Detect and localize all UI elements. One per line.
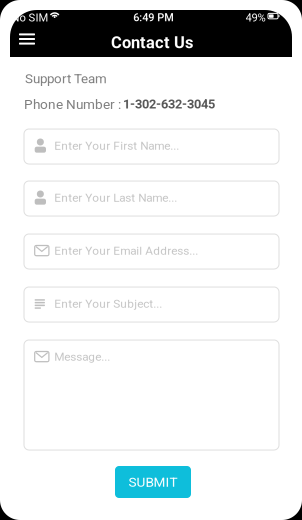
staticText: SUBMIT [128, 474, 177, 490]
staticText: Phone Number : [24, 96, 124, 112]
staticText: Enter Your Email Address... [54, 244, 198, 258]
staticText: Enter Your First Name... [54, 139, 179, 153]
staticText: Support Team [25, 71, 107, 87]
staticText: 1-302-632-3045 [123, 97, 215, 112]
staticText: 6:49 PM [133, 11, 174, 24]
staticText: Contact Us [111, 33, 193, 52]
staticText: Message... [54, 350, 110, 364]
staticText: No SIM [12, 11, 49, 24]
button[interactable]: SUBMIT [115, 466, 191, 498]
button[interactable]: Menu [12, 25, 42, 53]
staticText: Enter Your Last Name... [54, 191, 177, 205]
staticText: Enter Your Subject... [54, 297, 162, 311]
staticText: 49% [246, 11, 266, 24]
